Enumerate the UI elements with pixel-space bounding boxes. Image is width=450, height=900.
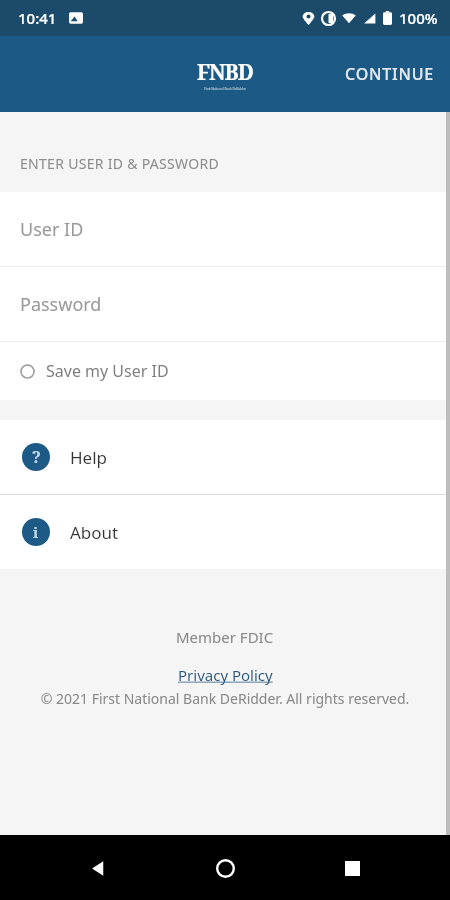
staticText: i	[33, 522, 39, 542]
staticText: Save my User ID	[46, 360, 169, 382]
staticText: User ID	[20, 217, 84, 242]
staticText: CONTINUE	[345, 63, 434, 85]
button[interactable]: ?	[0, 420, 450, 494]
button[interactable]: Back	[78, 848, 118, 888]
staticText: ?	[32, 446, 41, 468]
staticText: Privacy Policy	[178, 665, 273, 685]
button[interactable]: CONTINUE	[329, 49, 450, 99]
staticText: FNBD	[197, 58, 253, 87]
staticText: Help	[70, 446, 108, 469]
button[interactable]: Home	[205, 848, 245, 888]
staticText: About	[70, 521, 119, 544]
button[interactable]: Password	[0, 267, 450, 341]
staticText: First National Bank DeRidder	[204, 87, 246, 91]
button[interactable]: Recent apps	[332, 848, 372, 888]
button[interactable]: Save my User ID	[0, 342, 450, 400]
button[interactable]: Privacy Policy	[178, 665, 273, 685]
staticText: Member FDIC	[176, 627, 274, 647]
staticText: 10:41	[18, 8, 57, 28]
staticText: ENTER USER ID & PASSWORD	[20, 154, 219, 173]
staticText: Password	[20, 292, 102, 317]
staticText: © 2021 First National Bank DeRidder. All…	[0, 689, 450, 708]
staticText: 100%	[399, 8, 438, 28]
button[interactable]: User ID	[0, 192, 450, 266]
button[interactable]: i	[0, 495, 450, 569]
